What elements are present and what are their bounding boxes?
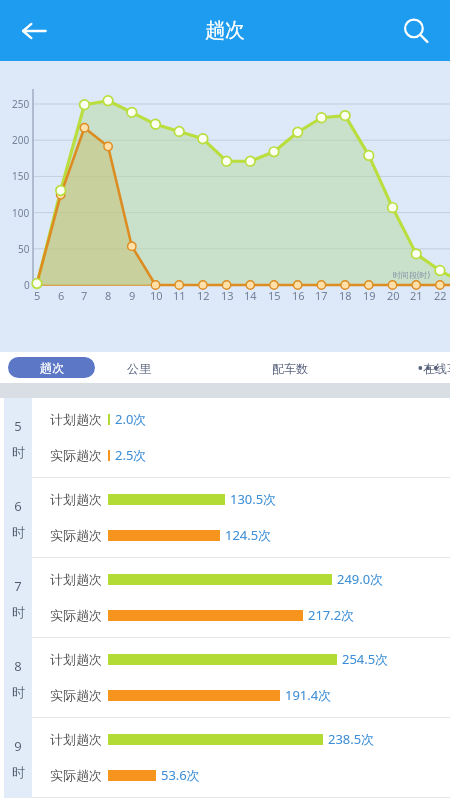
staticText: 22 (434, 288, 447, 303)
staticText: 计划趟次 (50, 411, 102, 427)
button[interactable]: More tabs (406, 354, 450, 382)
button[interactable]: 趟次 (8, 357, 95, 378)
staticText: 8 (14, 657, 22, 675)
staticText: 21 (410, 288, 423, 303)
staticText: 14 (244, 288, 257, 303)
button[interactable]: Back (10, 7, 58, 55)
staticText: 9 (129, 288, 136, 303)
staticText: 6 (58, 288, 65, 303)
button[interactable]: 公里 (105, 354, 173, 382)
staticText: 配车数 (272, 361, 308, 376)
staticText: 19 (363, 288, 376, 303)
staticText: 公里 (127, 361, 151, 376)
staticText: 53.6次 (161, 766, 200, 784)
staticText: 实际趟次 (50, 687, 102, 703)
staticText: 计划趟次 (50, 731, 102, 747)
staticText: 20 (387, 288, 400, 303)
staticText: 130.5次 (230, 490, 277, 508)
staticText: 16 (292, 288, 305, 303)
staticText: 实际趟次 (50, 527, 102, 543)
button[interactable]: 配车数 (256, 354, 324, 382)
staticText: 100 (12, 206, 30, 220)
staticText: 实际趟次 (50, 607, 102, 623)
button[interactable]: 在线车辆 (413, 354, 450, 382)
staticText: 10 (150, 288, 163, 303)
staticText: 计划趟次 (50, 491, 102, 507)
staticText: 时间段(时) (393, 269, 430, 280)
staticText: 2.5次 (115, 446, 147, 464)
staticText: 5 (34, 288, 41, 303)
button[interactable]: Search (392, 7, 440, 55)
staticText: 250 (12, 97, 30, 111)
staticText: 50 (18, 242, 30, 256)
staticText: 8 (105, 288, 112, 303)
staticText: 7 (81, 288, 88, 303)
staticText: 2.0次 (115, 410, 147, 428)
staticText: 124.5次 (225, 526, 272, 544)
staticText: 238.5次 (328, 730, 375, 748)
staticText: 12 (197, 288, 210, 303)
staticText: 6 (14, 497, 22, 515)
staticText: 17 (315, 288, 328, 303)
staticText: 趟次 (40, 360, 64, 375)
staticText: 217.2次 (308, 606, 355, 624)
staticText: 时 (12, 764, 25, 780)
staticText: 实际趟次 (50, 767, 102, 783)
staticText: 13 (221, 288, 234, 303)
staticText: 计划趟次 (50, 571, 102, 587)
staticText: 时 (12, 604, 25, 620)
staticText: 7 (14, 577, 22, 595)
staticText: 254.5次 (342, 650, 389, 668)
staticText: 计划趟次 (50, 651, 102, 667)
staticText: 249.0次 (337, 570, 384, 588)
staticText: 时 (12, 684, 25, 700)
staticText: 实际趟次 (50, 447, 102, 463)
staticText: 9 (14, 737, 22, 755)
staticText: 在线车辆 (423, 361, 450, 376)
staticText: 200 (12, 133, 30, 147)
staticText: 11 (173, 288, 186, 303)
staticText: 趟次 (205, 18, 245, 43)
staticText: 5 (14, 417, 22, 435)
staticText: 0 (24, 278, 30, 292)
staticText: 150 (12, 169, 30, 183)
staticText: 时 (12, 444, 25, 460)
staticText: 时 (12, 524, 25, 540)
staticText: 15 (268, 288, 281, 303)
staticText: 18 (339, 288, 352, 303)
staticText: 191.4次 (285, 686, 332, 704)
